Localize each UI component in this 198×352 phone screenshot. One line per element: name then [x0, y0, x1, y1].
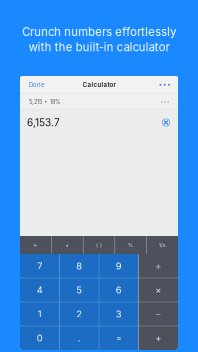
- staticText: 3: [116, 308, 122, 320]
- staticText: ×: [155, 284, 161, 296]
- staticText: 6,153.7: [27, 116, 60, 129]
- button[interactable]: ( ): [83, 236, 115, 254]
- button[interactable]: =: [99, 326, 138, 350]
- button[interactable]: .: [59, 326, 99, 350]
- staticText: ÷: [155, 260, 161, 272]
- staticText: +: [155, 332, 161, 344]
- button[interactable]: 8: [59, 254, 99, 278]
- staticText: 0: [37, 332, 43, 344]
- button[interactable]: 1/x: [146, 236, 178, 254]
- staticText: ( ): [96, 242, 102, 248]
- staticText: 5,215 + 18%: [29, 99, 60, 105]
- button[interactable]: 4: [20, 278, 59, 302]
- staticText: 1: [38, 308, 42, 320]
- staticText: %: [128, 242, 133, 248]
- button[interactable]: +: [138, 326, 178, 350]
- staticText: .: [78, 332, 81, 344]
- staticText: 9: [116, 260, 122, 272]
- staticText: with the built-in calculator: [28, 40, 169, 54]
- button[interactable]: 3: [99, 302, 138, 326]
- button[interactable]: 7: [20, 254, 59, 278]
- button[interactable]: %: [115, 236, 146, 254]
- button[interactable]: 9: [99, 254, 138, 278]
- staticText: 8: [76, 260, 82, 272]
- button[interactable]: ←: [20, 236, 52, 254]
- button[interactable]: ×: [138, 278, 178, 302]
- staticText: Crunch numbers effortlessly: [22, 25, 176, 39]
- button[interactable]: 1: [20, 302, 59, 326]
- button[interactable]: ÷: [138, 254, 178, 278]
- staticText: 7: [37, 260, 42, 272]
- button[interactable]: More options: [140, 76, 178, 93]
- staticText: ←: [33, 242, 38, 248]
- staticText: 5: [76, 284, 82, 296]
- staticText: 1/x: [159, 242, 166, 248]
- button[interactable]: 2: [59, 302, 99, 326]
- staticText: 6: [116, 284, 122, 296]
- button[interactable]: 5: [59, 278, 99, 302]
- button[interactable]: 6: [99, 278, 138, 302]
- button[interactable]: ±: [52, 236, 83, 254]
- button[interactable]: Done: [20, 76, 61, 93]
- button[interactable]: Clear: [158, 110, 174, 134]
- staticText: −: [155, 308, 161, 320]
- button[interactable]: −: [138, 302, 178, 326]
- staticText: 2: [76, 308, 82, 320]
- staticText: 4: [37, 284, 43, 296]
- staticText: Done: [29, 81, 44, 88]
- button[interactable]: 0: [20, 326, 59, 350]
- staticText: Calculator: [82, 81, 115, 88]
- staticText: ±: [65, 242, 69, 248]
- staticText: =: [116, 332, 122, 344]
